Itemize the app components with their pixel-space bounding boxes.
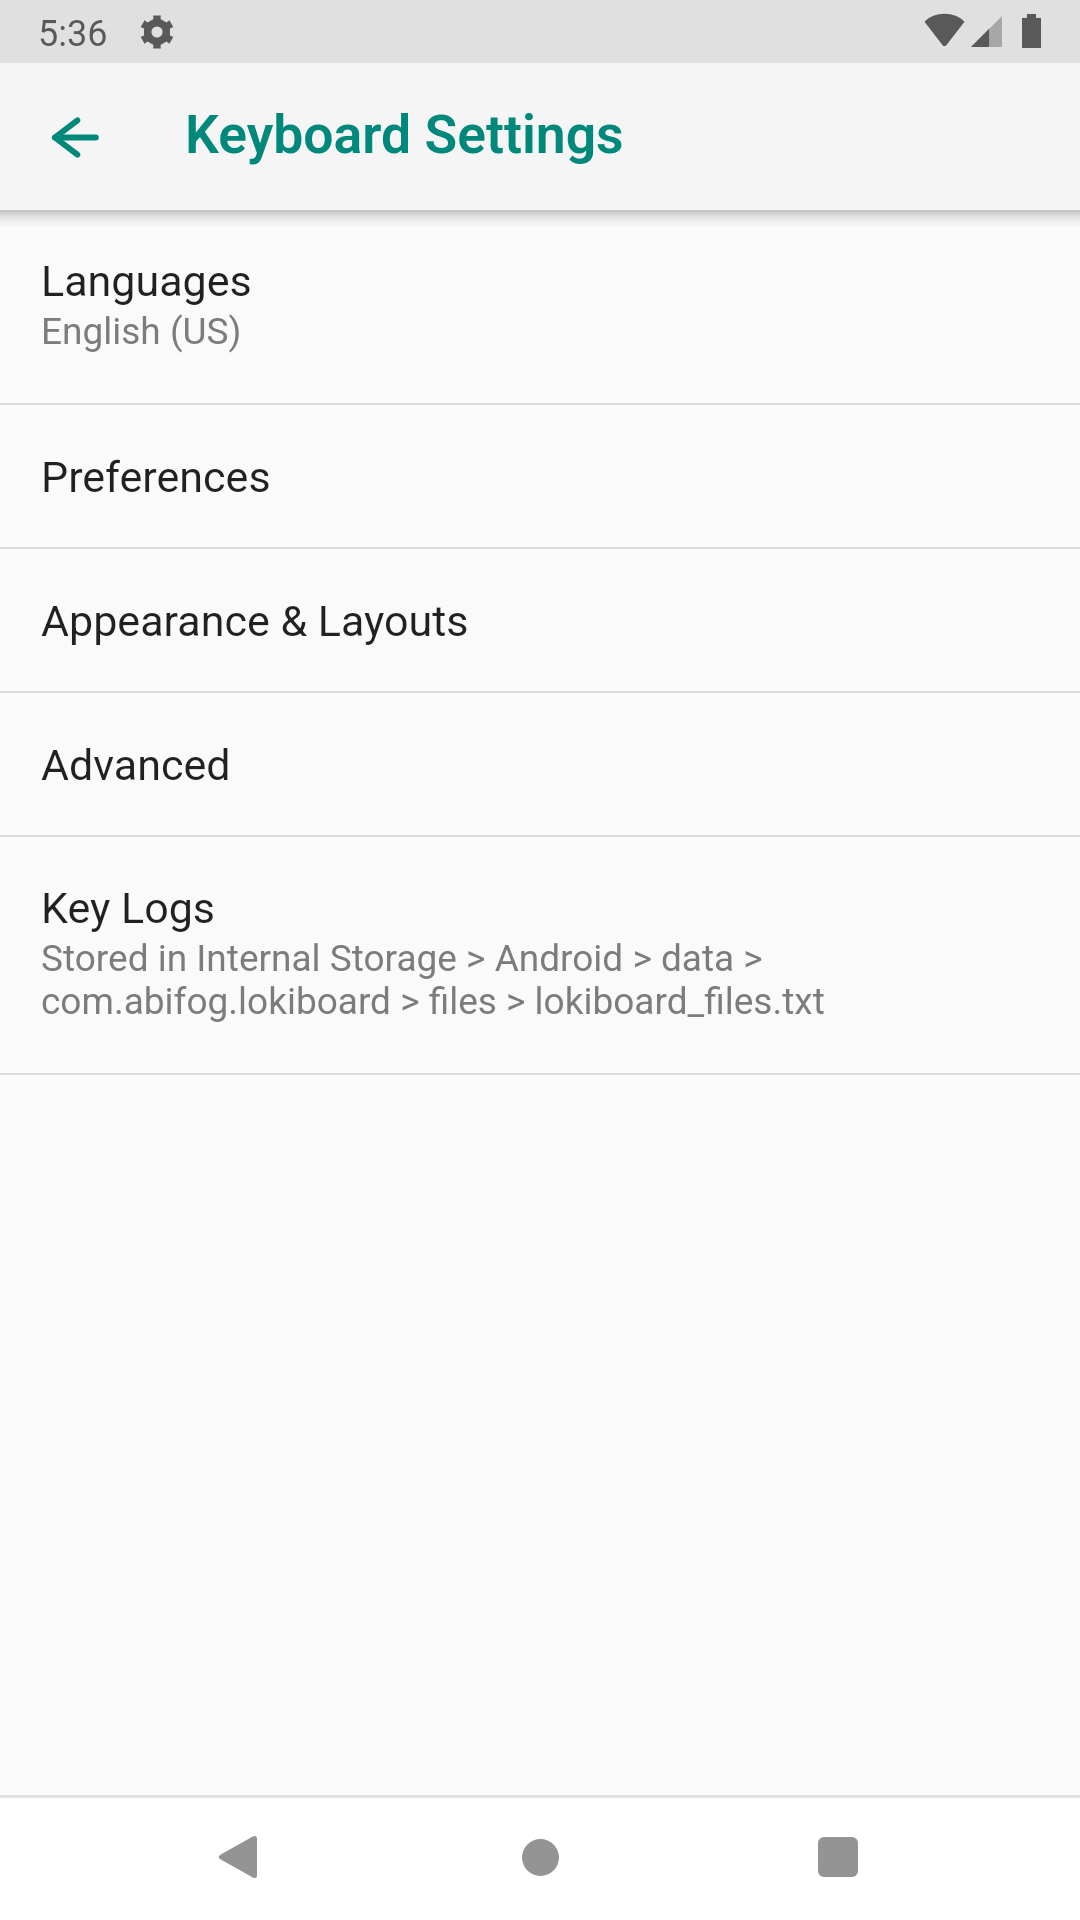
staticText: English (US) <box>41 310 242 353</box>
button[interactable]: Recent apps <box>778 1797 898 1917</box>
button[interactable]: Languages <box>0 210 1080 403</box>
staticText: Appearance & Layouts <box>41 596 469 646</box>
staticText: Advanced <box>41 740 231 790</box>
button[interactable]: Navigate up <box>26 89 122 185</box>
staticText: Keyboard Settings <box>185 103 624 166</box>
button[interactable]: Key Logs <box>0 837 1080 1073</box>
button[interactable]: Home <box>480 1797 600 1917</box>
staticText: Key Logs <box>41 883 215 933</box>
button[interactable]: Appearance & Layouts <box>0 549 1080 691</box>
staticText: Preferences <box>41 452 271 502</box>
staticText: Languages <box>41 256 252 306</box>
button[interactable]: Preferences <box>0 405 1080 547</box>
button[interactable]: Back <box>178 1797 298 1917</box>
staticText: Stored in Internal Storage > Android > d… <box>41 937 1040 1023</box>
button[interactable]: Advanced <box>0 693 1080 835</box>
staticText: 5:36 <box>38 13 108 55</box>
